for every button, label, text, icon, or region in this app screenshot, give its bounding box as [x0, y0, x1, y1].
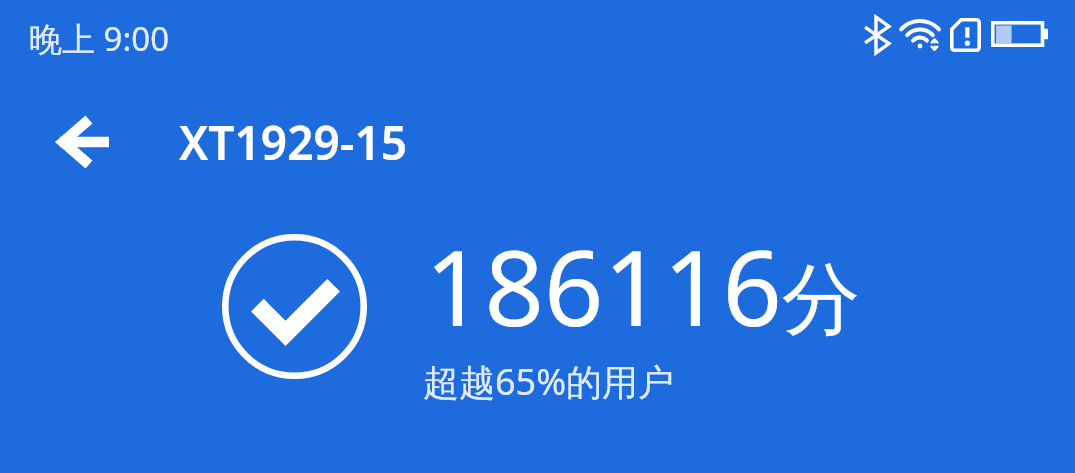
staticText: XT1929-15 — [179, 111, 408, 174]
button[interactable]: Back — [46, 106, 118, 178]
staticText: 超越65%的用户 — [423, 357, 675, 406]
staticText: 186116分 — [425, 215, 860, 357]
other: Battery 35 percent — [991, 21, 1048, 47]
other: No SIM card — [950, 18, 981, 52]
other: Bluetooth on — [864, 17, 890, 53]
other: Benchmark finished — [222, 234, 367, 379]
other: Wi-Fi connected — [900, 19, 942, 53]
staticText: 晚上 9:00 — [29, 16, 170, 61]
